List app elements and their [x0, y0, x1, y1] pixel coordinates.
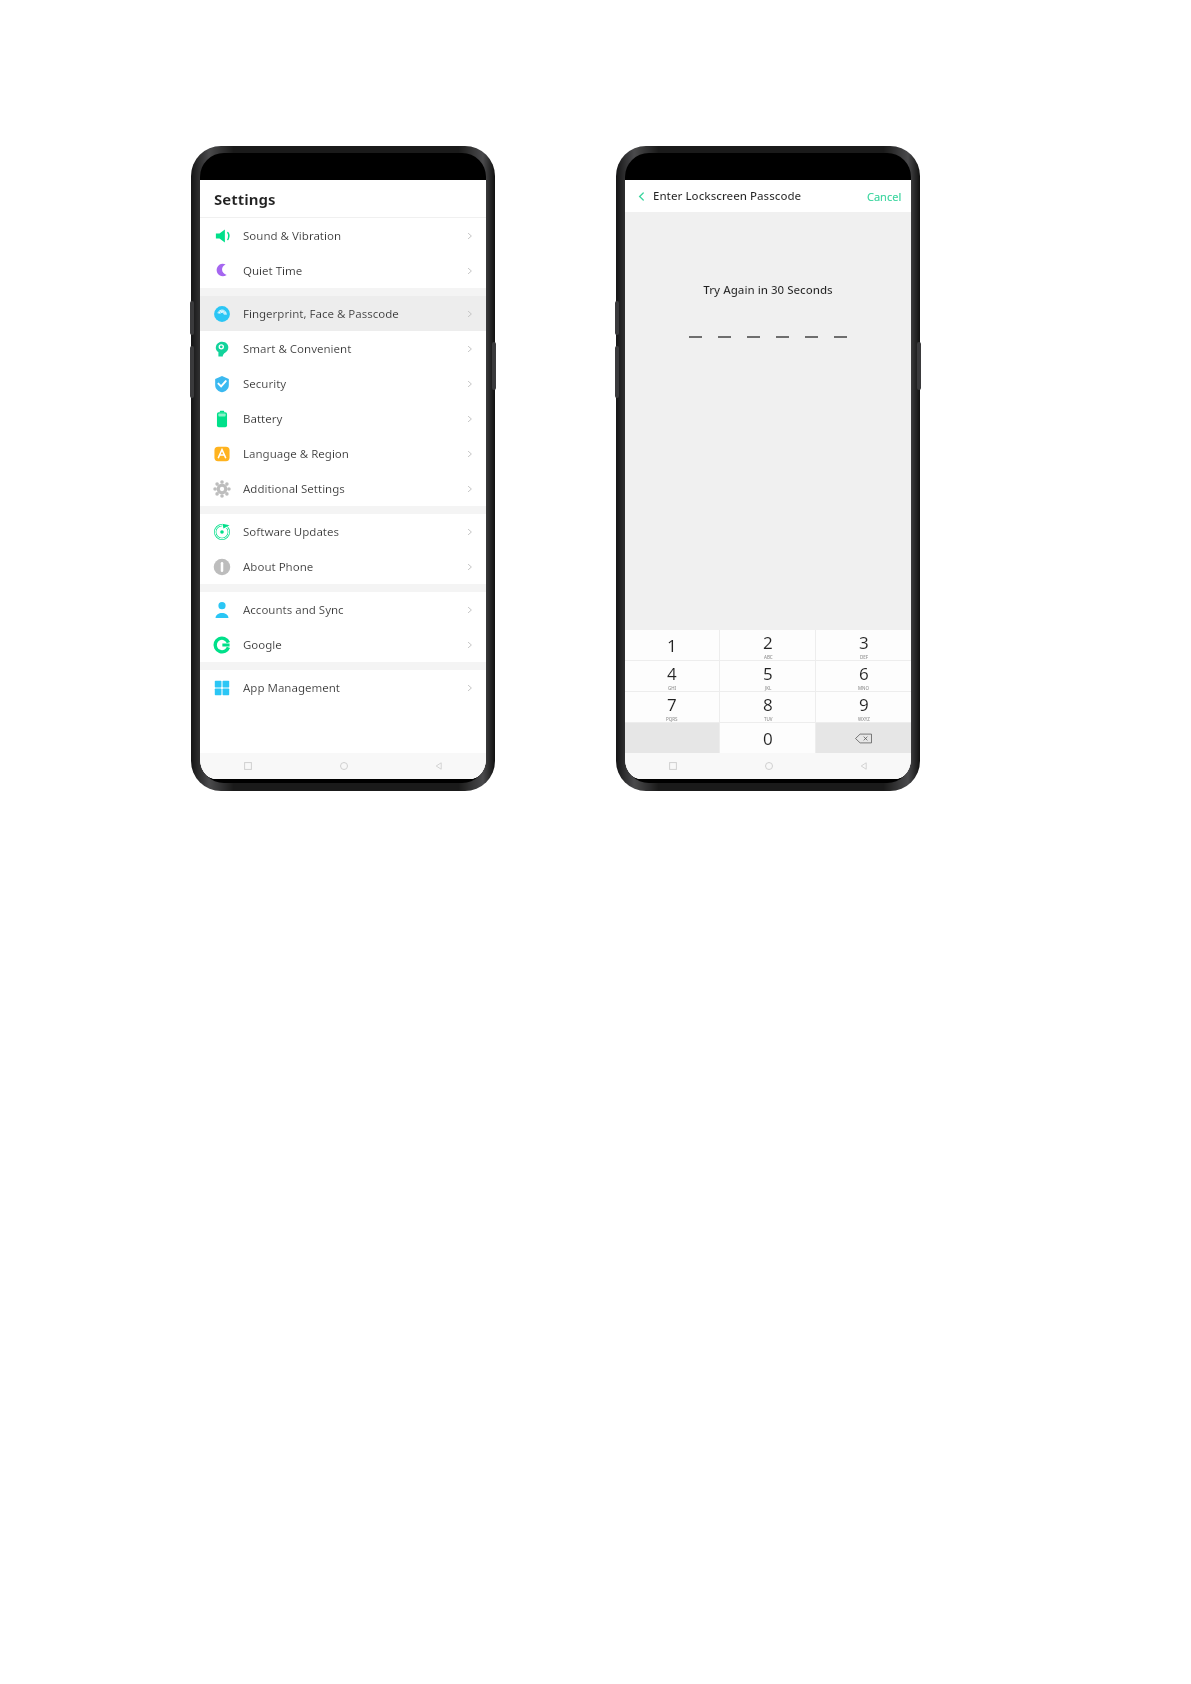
button[interactable]: 3: [816, 630, 911, 660]
staticText: 5: [763, 662, 773, 685]
button[interactable]: Accounts and Sync: [200, 592, 486, 627]
button[interactable]: Google: [200, 627, 486, 662]
staticText: Accounts and Sync: [243, 602, 344, 618]
staticText: Google: [243, 637, 282, 653]
staticText: 4: [667, 662, 677, 685]
staticText: Smart & Convenient: [243, 341, 352, 357]
button[interactable]: Quiet Time: [200, 253, 486, 288]
button[interactable]: 5: [720, 661, 815, 691]
button[interactable]: App Management: [200, 670, 486, 705]
button[interactable]: Sound & Vibration: [200, 218, 486, 253]
staticText: Security: [243, 376, 287, 392]
button[interactable]: 7: [625, 692, 719, 722]
staticText: Settings: [214, 189, 276, 209]
button[interactable]: 0: [720, 723, 815, 753]
staticText: 7: [667, 693, 677, 716]
staticText: 8: [763, 693, 773, 716]
staticText: Quiet Time: [243, 263, 303, 279]
button[interactable]: Battery: [200, 401, 486, 436]
button[interactable]: Back: [632, 187, 650, 205]
button[interactable]: About Phone: [200, 549, 486, 584]
staticText: 9: [859, 693, 869, 716]
staticText: App Management: [243, 680, 340, 696]
staticText: DEF: [860, 654, 869, 660]
staticText: WXYZ: [858, 716, 870, 722]
button[interactable]: Software Updates: [200, 514, 486, 549]
button[interactable]: Cancel: [858, 185, 911, 208]
staticText: About Phone: [243, 559, 314, 575]
staticText: 1: [667, 634, 677, 657]
button[interactable]: Delete: [816, 723, 911, 753]
button[interactable]: Fingerprint, Face & Passcode: [200, 296, 486, 331]
button[interactable]: Smart & Convenient: [200, 331, 486, 366]
button[interactable]: Back: [391, 753, 486, 779]
staticText: Sound & Vibration: [243, 228, 342, 244]
staticText: Language & Region: [243, 446, 349, 462]
staticText: 0: [763, 727, 773, 750]
staticText: Cancel: [867, 189, 902, 204]
button[interactable]: 9: [816, 692, 911, 722]
staticText: JKL: [765, 685, 772, 691]
staticText: ABC: [764, 654, 773, 660]
staticText: 3: [859, 631, 869, 654]
button[interactable]: Recents: [200, 753, 296, 779]
button[interactable]: Recents: [625, 753, 721, 779]
staticText: GHI: [668, 685, 677, 691]
staticText: Additional Settings: [243, 481, 345, 497]
button[interactable]: Back: [816, 753, 911, 779]
button[interactable]: 6: [816, 661, 911, 691]
button[interactable]: 2: [720, 630, 815, 660]
staticText: Fingerprint, Face & Passcode: [243, 306, 399, 322]
staticText: MNO: [858, 685, 870, 691]
button[interactable]: Additional Settings: [200, 471, 486, 506]
button[interactable]: 4: [625, 661, 719, 691]
button[interactable]: 1: [625, 630, 719, 660]
staticText: Enter Lockscreen Passcode: [653, 188, 802, 204]
staticText: TUV: [764, 716, 773, 722]
button[interactable]: 8: [720, 692, 815, 722]
button[interactable]: Language & Region: [200, 436, 486, 471]
staticText: 6: [859, 662, 869, 685]
staticText: Try Again in 30 Seconds: [703, 282, 833, 298]
staticText: 2: [763, 631, 773, 654]
staticText: Battery: [243, 411, 283, 427]
staticText: Software Updates: [243, 524, 340, 540]
button[interactable]: Security: [200, 366, 486, 401]
staticText: PQRS: [666, 716, 678, 722]
